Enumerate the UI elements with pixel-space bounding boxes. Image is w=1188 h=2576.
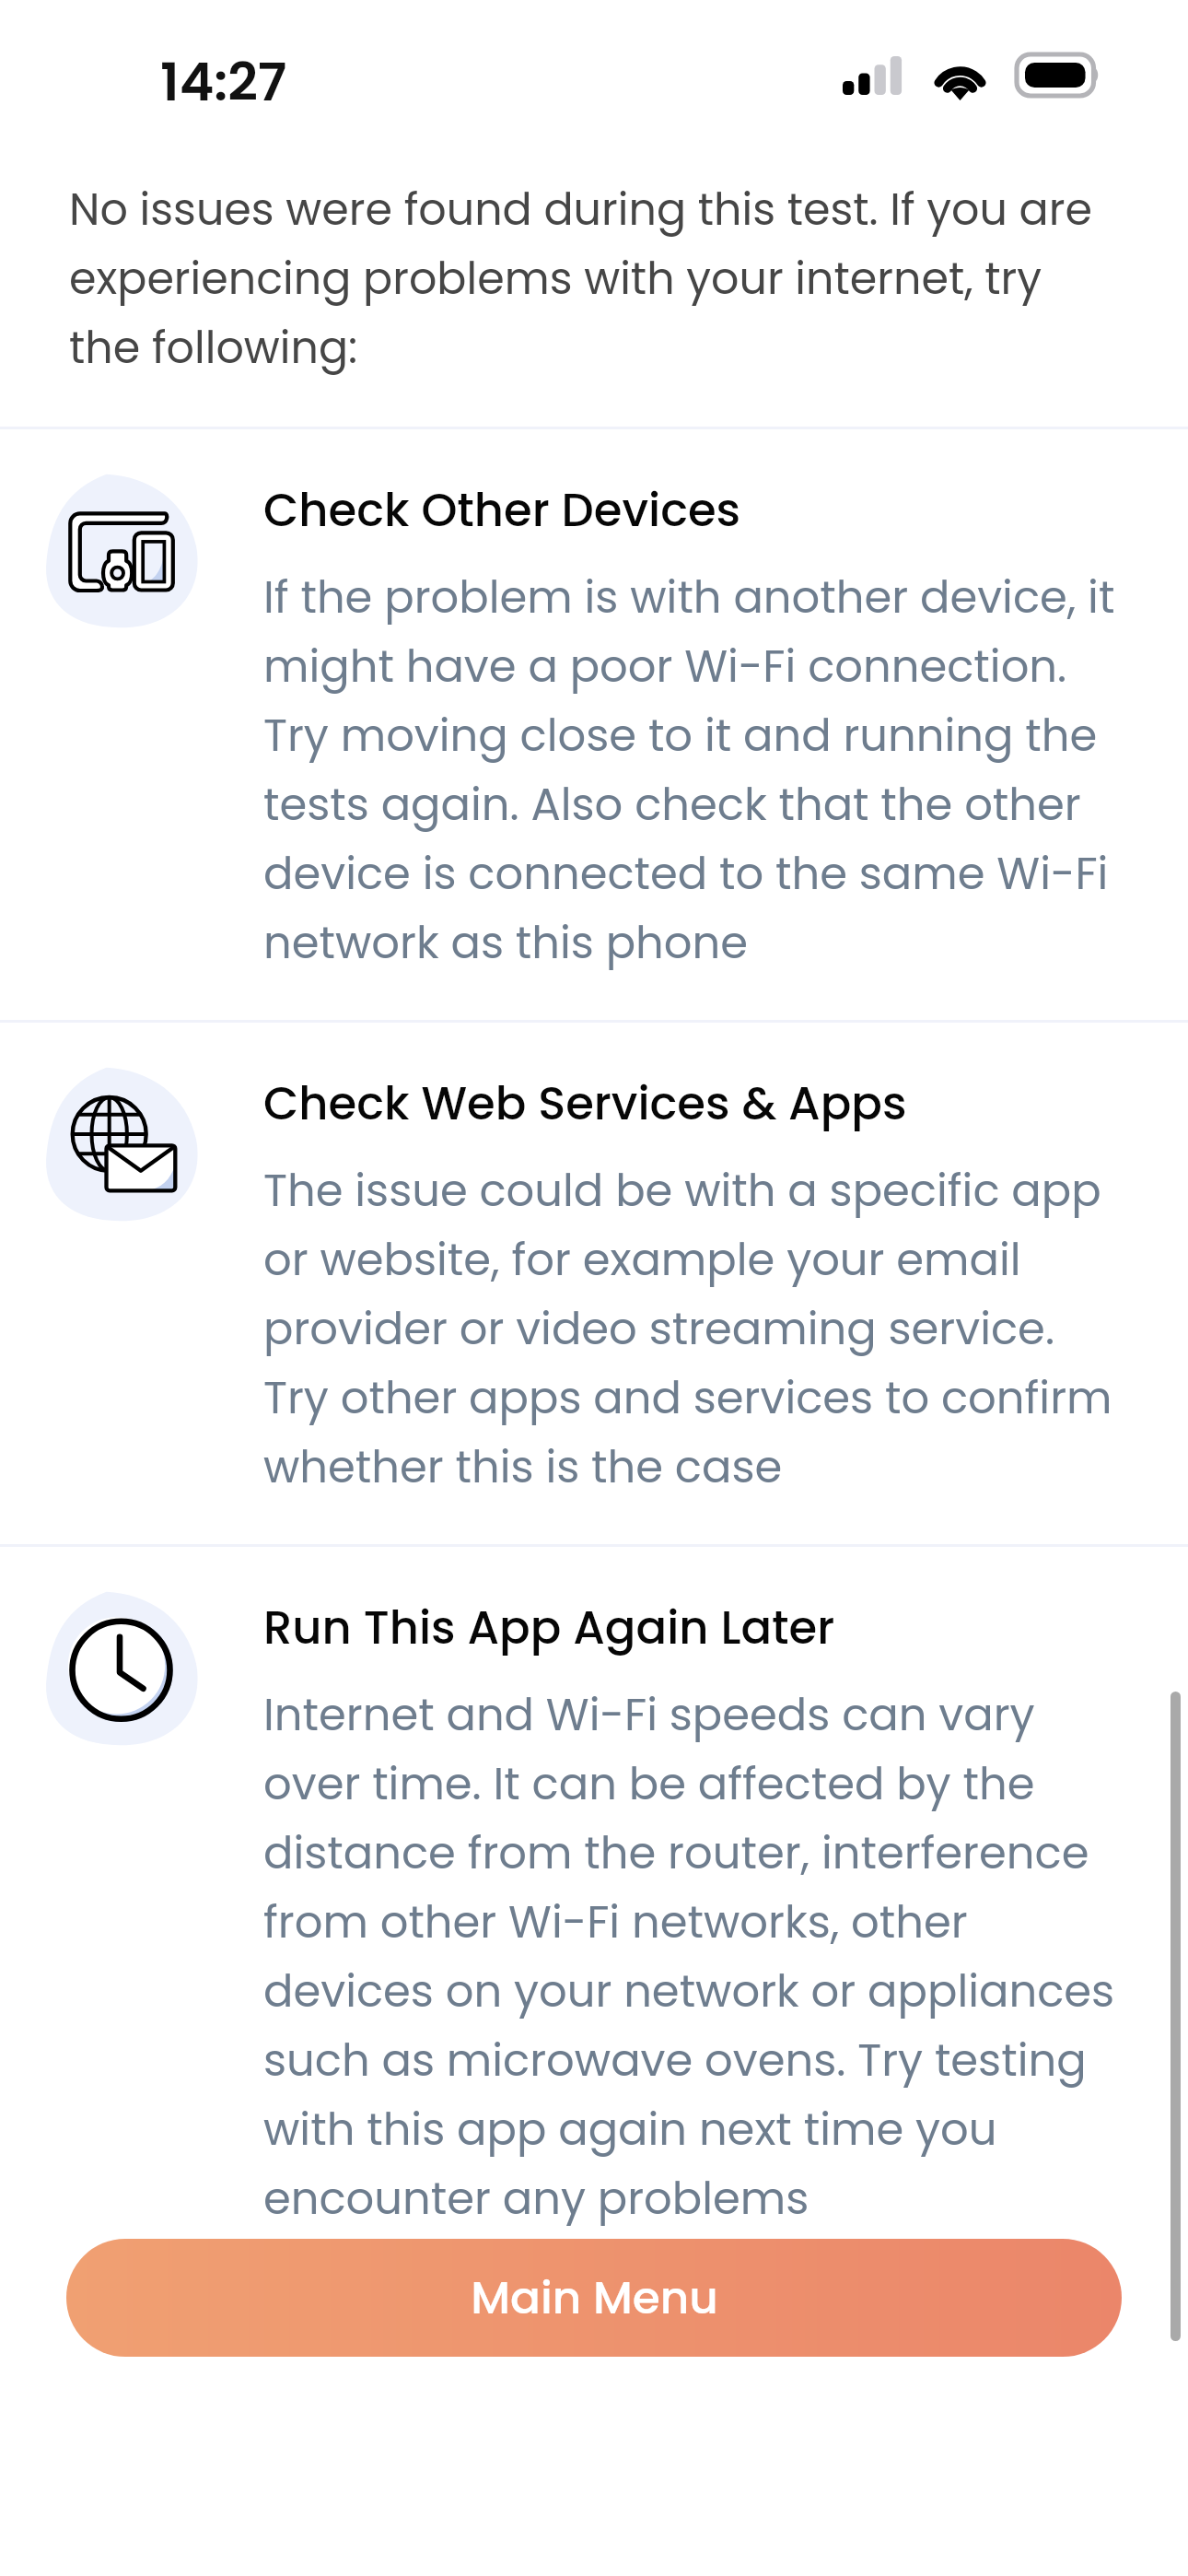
staticText: 14:27 (160, 45, 287, 119)
other: Clock (39, 1593, 204, 1759)
staticText: Check Web Services & Apps (263, 1069, 907, 1138)
other: Other devices (39, 475, 204, 641)
staticText: Main Menu (471, 2266, 718, 2329)
staticText: No issues were found during this test. I… (69, 174, 1108, 381)
staticText: Internet and Wi-Fi speeds can vary over … (263, 1680, 1116, 2232)
button[interactable]: Main Menu (66, 2239, 1122, 2357)
other: Web services and apps (39, 1069, 204, 1235)
button[interactable]: Web services and apps (0, 1023, 1188, 1544)
staticText: The issue could be with a specific app o… (263, 1155, 1116, 1501)
staticText: Run This App Again Later (263, 1593, 835, 1662)
staticText: Check Other Devices (263, 475, 741, 544)
staticText: If the problem is with another device, i… (263, 562, 1116, 977)
button[interactable]: Other devices (0, 429, 1188, 1020)
button[interactable]: Clock (0, 1547, 1188, 2276)
